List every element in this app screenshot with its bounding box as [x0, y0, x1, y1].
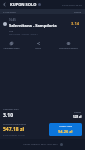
- staticText: Piłka nożna / Włochy / Serie A: [9, 33, 38, 36]
- staticText: 3.10: [3, 112, 13, 119]
- staticText: Stawka: [74, 111, 82, 114]
- button[interactable]: Coupon info: [38, 3, 41, 6]
- staticText: w tym podatek 10.75 zł: [3, 134, 25, 137]
- staticText: Wygrana potencjalna: [3, 123, 26, 126]
- staticText: 24.05.2023 20:56: [62, 3, 82, 6]
- staticText: Wynik: [74, 10, 82, 13]
- staticText: 547.18 zł: [3, 126, 24, 133]
- button[interactable]: Zrzut ekranu kuponu: [52, 42, 85, 50]
- staticText: 528 zł: [73, 115, 82, 119]
- staticText: 94.26 zł: [58, 129, 73, 134]
- button[interactable]: Back: [0, 0, 9, 9]
- button[interactable]: Udostępnij kupon: [0, 42, 23, 50]
- staticText: Udostępnij kupon: [0, 47, 23, 50]
- staticText: Zrzut ekranu kuponu: [52, 47, 85, 50]
- staticText: Wypłać: Total: [59, 125, 72, 128]
- staticText: Kopiuj: [27, 47, 49, 50]
- button[interactable]: Copy coupon number: [60, 143, 63, 146]
- staticText: Całkowity kurs: [3, 108, 19, 111]
- staticText: KUPON SOLO: [10, 2, 37, 7]
- staticText: Numer kuponu: 3847-1932-5561: [23, 143, 58, 146]
- button[interactable]: Wypłać: Total: [49, 123, 82, 136]
- staticText: 16:45: [9, 18, 16, 22]
- button[interactable]: Kopiuj: [27, 42, 49, 50]
- staticText: 21.05.2023: [3, 10, 16, 13]
- staticText: 1X2: [9, 29, 14, 32]
- staticText: 3.14: [71, 21, 79, 26]
- staticText: Salernitana - Sampdoria: [9, 23, 57, 28]
